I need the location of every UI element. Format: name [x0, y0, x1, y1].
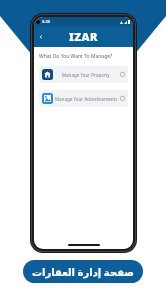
staticText: صفحة إدارة العقارات	[32, 265, 134, 279]
other: More info	[120, 96, 125, 101]
staticText: Manage Your Advertisements	[55, 96, 118, 102]
staticText: IZAR	[69, 29, 98, 44]
staticText: Manage Your Property	[62, 72, 110, 78]
button[interactable]: Manage Your Property	[39, 66, 128, 83]
button[interactable]: Back	[36, 32, 45, 41]
other: More info	[120, 72, 125, 77]
button[interactable]: صفحة إدارة العقارات	[23, 260, 143, 283]
staticText: 5:35	[42, 19, 50, 24]
button[interactable]: Manage Your Advertisements	[39, 90, 128, 107]
staticText: What Do You Want To Manage?	[39, 53, 113, 60]
